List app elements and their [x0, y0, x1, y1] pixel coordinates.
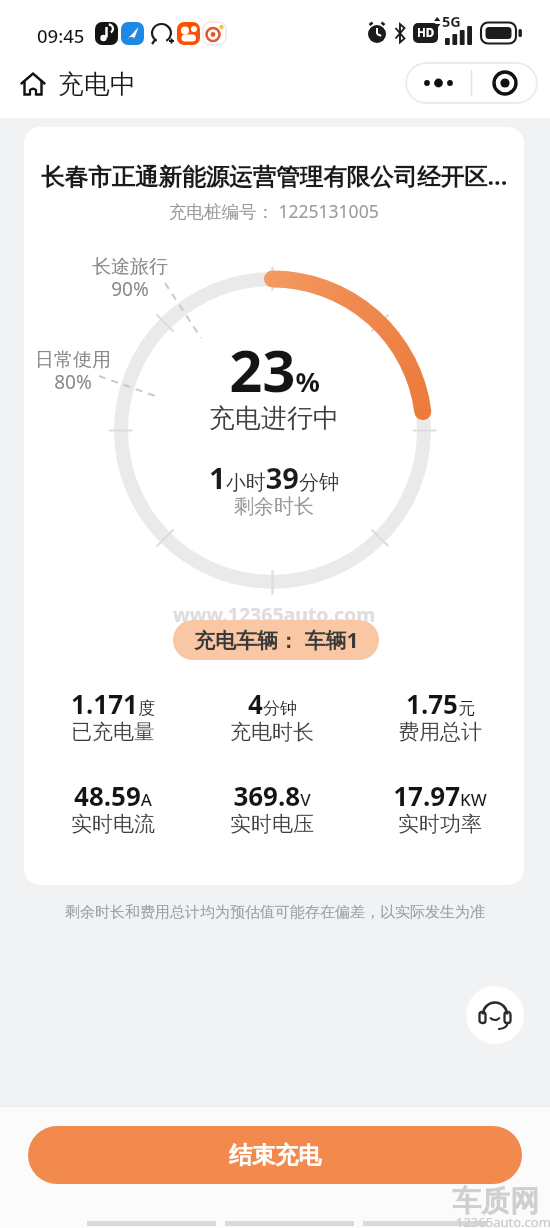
- staticText: 实时电流: [71, 811, 155, 837]
- staticText: HD: [417, 25, 435, 41]
- staticText: 1.75元: [406, 686, 475, 721]
- staticText: 日常使用 80%: [35, 348, 111, 395]
- staticText: 实时功率: [398, 811, 482, 837]
- staticText: 12365auto.com: [456, 1213, 550, 1228]
- staticText: 1小时39分钟: [209, 458, 339, 497]
- staticText: 充电进行中: [209, 402, 339, 435]
- staticText: 充电车辆： 车辆1: [194, 626, 359, 655]
- staticText: 车质网: [452, 1183, 539, 1220]
- staticText: 结束充电: [229, 1141, 321, 1170]
- staticText: 长春市正通新能源运营管理有限公司经开区...: [41, 160, 508, 192]
- staticText: 369.8V: [233, 778, 311, 813]
- staticText: 剩余时长和费用总计均为预估值可能存在偏差，以实际发生为准: [0, 903, 550, 922]
- staticText: 1.171度: [71, 686, 155, 721]
- staticText: 充电中: [58, 68, 136, 101]
- staticText: 4分钟: [248, 686, 297, 721]
- staticText: 已充电量: [71, 719, 155, 745]
- staticText: www.12365auto.com: [173, 601, 376, 628]
- button[interactable]: [18, 69, 48, 99]
- button[interactable]: 结束充电: [28, 1126, 522, 1184]
- button[interactable]: [405, 62, 471, 104]
- staticText: 5G: [442, 11, 461, 31]
- staticText: 09:45: [37, 23, 85, 48]
- staticText: 48.59A: [74, 778, 152, 813]
- staticText: 23%: [229, 330, 320, 409]
- staticText: 充电时长: [230, 719, 314, 745]
- staticText: 费用总计: [398, 719, 482, 745]
- button[interactable]: 充电车辆： 车辆1: [173, 620, 379, 660]
- button[interactable]: [466, 986, 524, 1044]
- staticText: 充电桩编号： 1225131005: [169, 199, 379, 223]
- staticText: 剩余时长: [234, 494, 314, 519]
- staticText: 长途旅行 90%: [92, 255, 168, 302]
- button[interactable]: [472, 62, 538, 104]
- staticText: 实时电压: [230, 811, 314, 837]
- staticText: 17.97KW: [393, 778, 487, 813]
